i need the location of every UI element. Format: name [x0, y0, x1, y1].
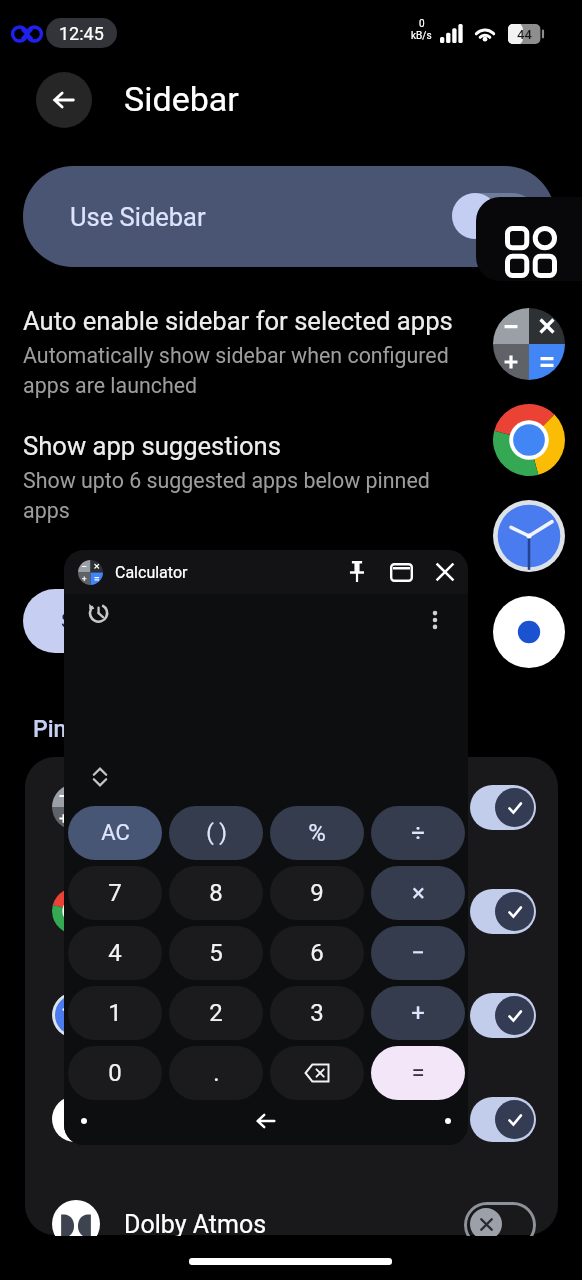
staticText: %: [308, 819, 326, 847]
button[interactable]: More options: [420, 605, 450, 635]
staticText: 8: [209, 879, 223, 907]
staticText: 44: [517, 27, 532, 42]
button[interactable]: Close: [429, 556, 461, 588]
button[interactable]: ×: [371, 866, 465, 920]
button[interactable]: Dolby Atmos toggle: [464, 1202, 536, 1236]
staticText: Sidebar: [124, 79, 239, 119]
button[interactable]: Files: [493, 596, 565, 668]
staticText: 5: [209, 939, 223, 967]
staticText: Use Sidebar: [70, 202, 206, 232]
staticText: 4: [108, 939, 122, 967]
button[interactable]: Chrome: [493, 404, 565, 476]
button[interactable]: 4: [68, 926, 162, 980]
button[interactable]: .: [169, 1046, 263, 1100]
button[interactable]: Calculator toggle: [470, 785, 536, 830]
staticText: Sidebar apps: [61, 609, 183, 634]
button[interactable]: [270, 1046, 364, 1100]
button[interactable]: +: [371, 986, 465, 1040]
button[interactable]: 3: [270, 986, 364, 1040]
staticText: =: [411, 1059, 425, 1087]
button[interactable]: Maximize: [385, 556, 417, 588]
staticText: Calculator: [115, 563, 188, 582]
staticText: 12:45: [59, 23, 104, 44]
button[interactable]: ( ): [169, 806, 263, 860]
staticText: ×: [412, 879, 425, 907]
staticText: kB/s: [411, 30, 432, 42]
staticText: 0: [108, 1059, 122, 1087]
button[interactable]: Clock: [493, 500, 565, 572]
staticText: 1: [108, 999, 122, 1027]
button[interactable]: =: [371, 1046, 465, 1100]
button[interactable]: %: [270, 806, 364, 860]
staticText: Auto enable sidebar for selected apps: [23, 306, 453, 336]
button[interactable]: Use Sidebar: [23, 166, 555, 267]
staticText: Dolby Atmos: [124, 1210, 267, 1236]
staticText: ÷: [411, 819, 425, 847]
button[interactable]: Auto enable sidebar for selected apps: [23, 306, 475, 398]
staticText: −: [411, 939, 425, 967]
staticText: Show upto 6 suggested apps below pinned …: [23, 468, 443, 523]
staticText: .: [213, 1059, 220, 1087]
button[interactable]: 7: [68, 866, 162, 920]
button[interactable]: 0: [68, 1046, 162, 1100]
button[interactable]: 8: [169, 866, 263, 920]
button[interactable]: 9: [270, 866, 364, 920]
button[interactable]: ÷: [371, 806, 465, 860]
staticText: AC: [101, 820, 130, 846]
button[interactable]: Show app suggestions: [23, 431, 443, 523]
button[interactable]: 6: [270, 926, 364, 980]
staticText: 3: [310, 999, 324, 1027]
staticText: 6: [310, 939, 324, 967]
staticText: 7: [108, 879, 122, 907]
staticText: 2: [209, 999, 223, 1027]
button[interactable]: 5: [169, 926, 263, 980]
button[interactable]: Chrome toggle: [470, 889, 536, 934]
button[interactable]: Sidebar launcher: [476, 197, 582, 281]
button[interactable]: 2: [169, 986, 263, 1040]
staticText: +: [411, 999, 425, 1027]
button[interactable]: Pin: [341, 556, 373, 588]
staticText: 9: [310, 879, 324, 907]
button[interactable]: Back: [246, 1101, 286, 1141]
button[interactable]: Files toggle: [470, 1097, 536, 1142]
staticText: Pinned: [33, 716, 105, 743]
staticText: ( ): [206, 820, 227, 846]
button[interactable]: 1: [68, 986, 162, 1040]
button[interactable]: −: [371, 926, 465, 980]
button[interactable]: Clock toggle: [470, 993, 536, 1038]
staticText: Automatically show sidebar when configur…: [23, 343, 475, 398]
button[interactable]: AC: [68, 806, 162, 860]
button[interactable]: Calculator: [493, 308, 565, 380]
staticText: 0: [419, 18, 425, 30]
button[interactable]: History: [84, 598, 110, 624]
staticText: Show app suggestions: [23, 431, 281, 461]
button[interactable]: Back: [36, 72, 92, 128]
